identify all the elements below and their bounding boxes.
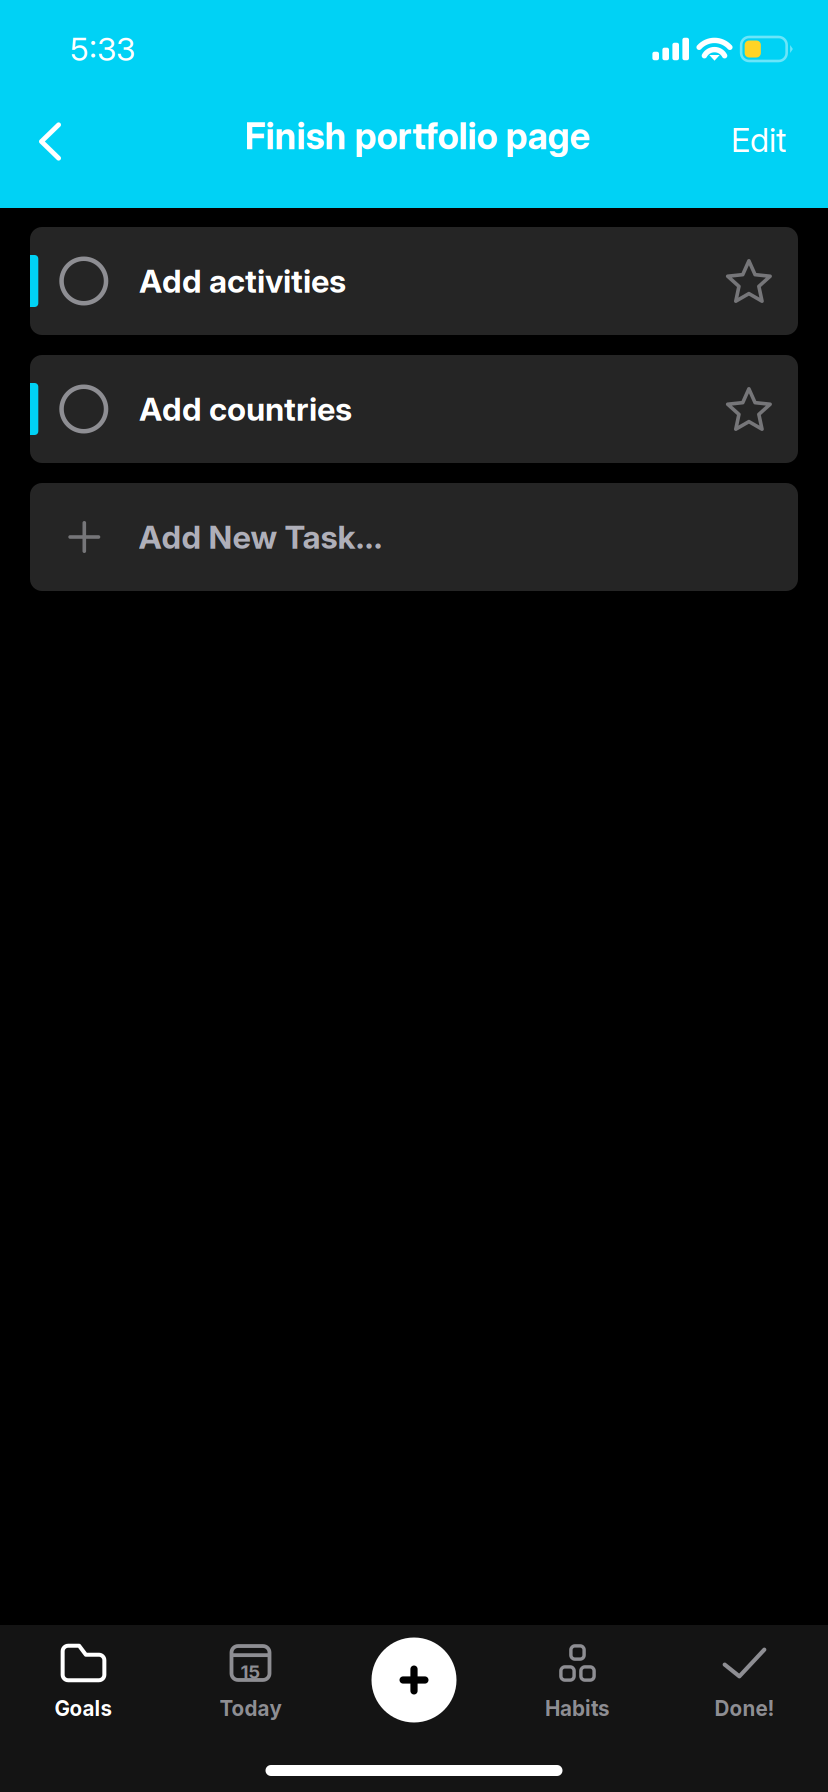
button[interactable]: Habits xyxy=(494,1625,661,1735)
button[interactable]: Add New Task... xyxy=(30,483,798,591)
staticText: Today xyxy=(219,1696,281,1721)
staticText: 15 xyxy=(240,1660,260,1683)
button[interactable]: Back xyxy=(0,98,110,174)
button[interactable]: Edit xyxy=(678,98,828,174)
staticText: Add New Task... xyxy=(139,518,383,556)
staticText: Goals xyxy=(54,1696,112,1721)
staticText: Add activities xyxy=(139,262,346,300)
button[interactable]: Add activities xyxy=(30,227,798,335)
button[interactable]: Add countries xyxy=(30,355,798,463)
button[interactable]: Add task xyxy=(371,1637,456,1722)
button[interactable]: Done! xyxy=(661,1625,828,1735)
staticText: Edit xyxy=(731,120,786,160)
button[interactable]: Goals xyxy=(0,1625,167,1735)
staticText: Add countries xyxy=(139,390,352,428)
staticText: Finish portfolio page xyxy=(244,114,590,158)
button[interactable]: 15 xyxy=(167,1625,334,1735)
staticText: Done! xyxy=(714,1696,774,1721)
staticText: 5:33 xyxy=(70,30,135,68)
staticText: Habits xyxy=(545,1696,610,1721)
